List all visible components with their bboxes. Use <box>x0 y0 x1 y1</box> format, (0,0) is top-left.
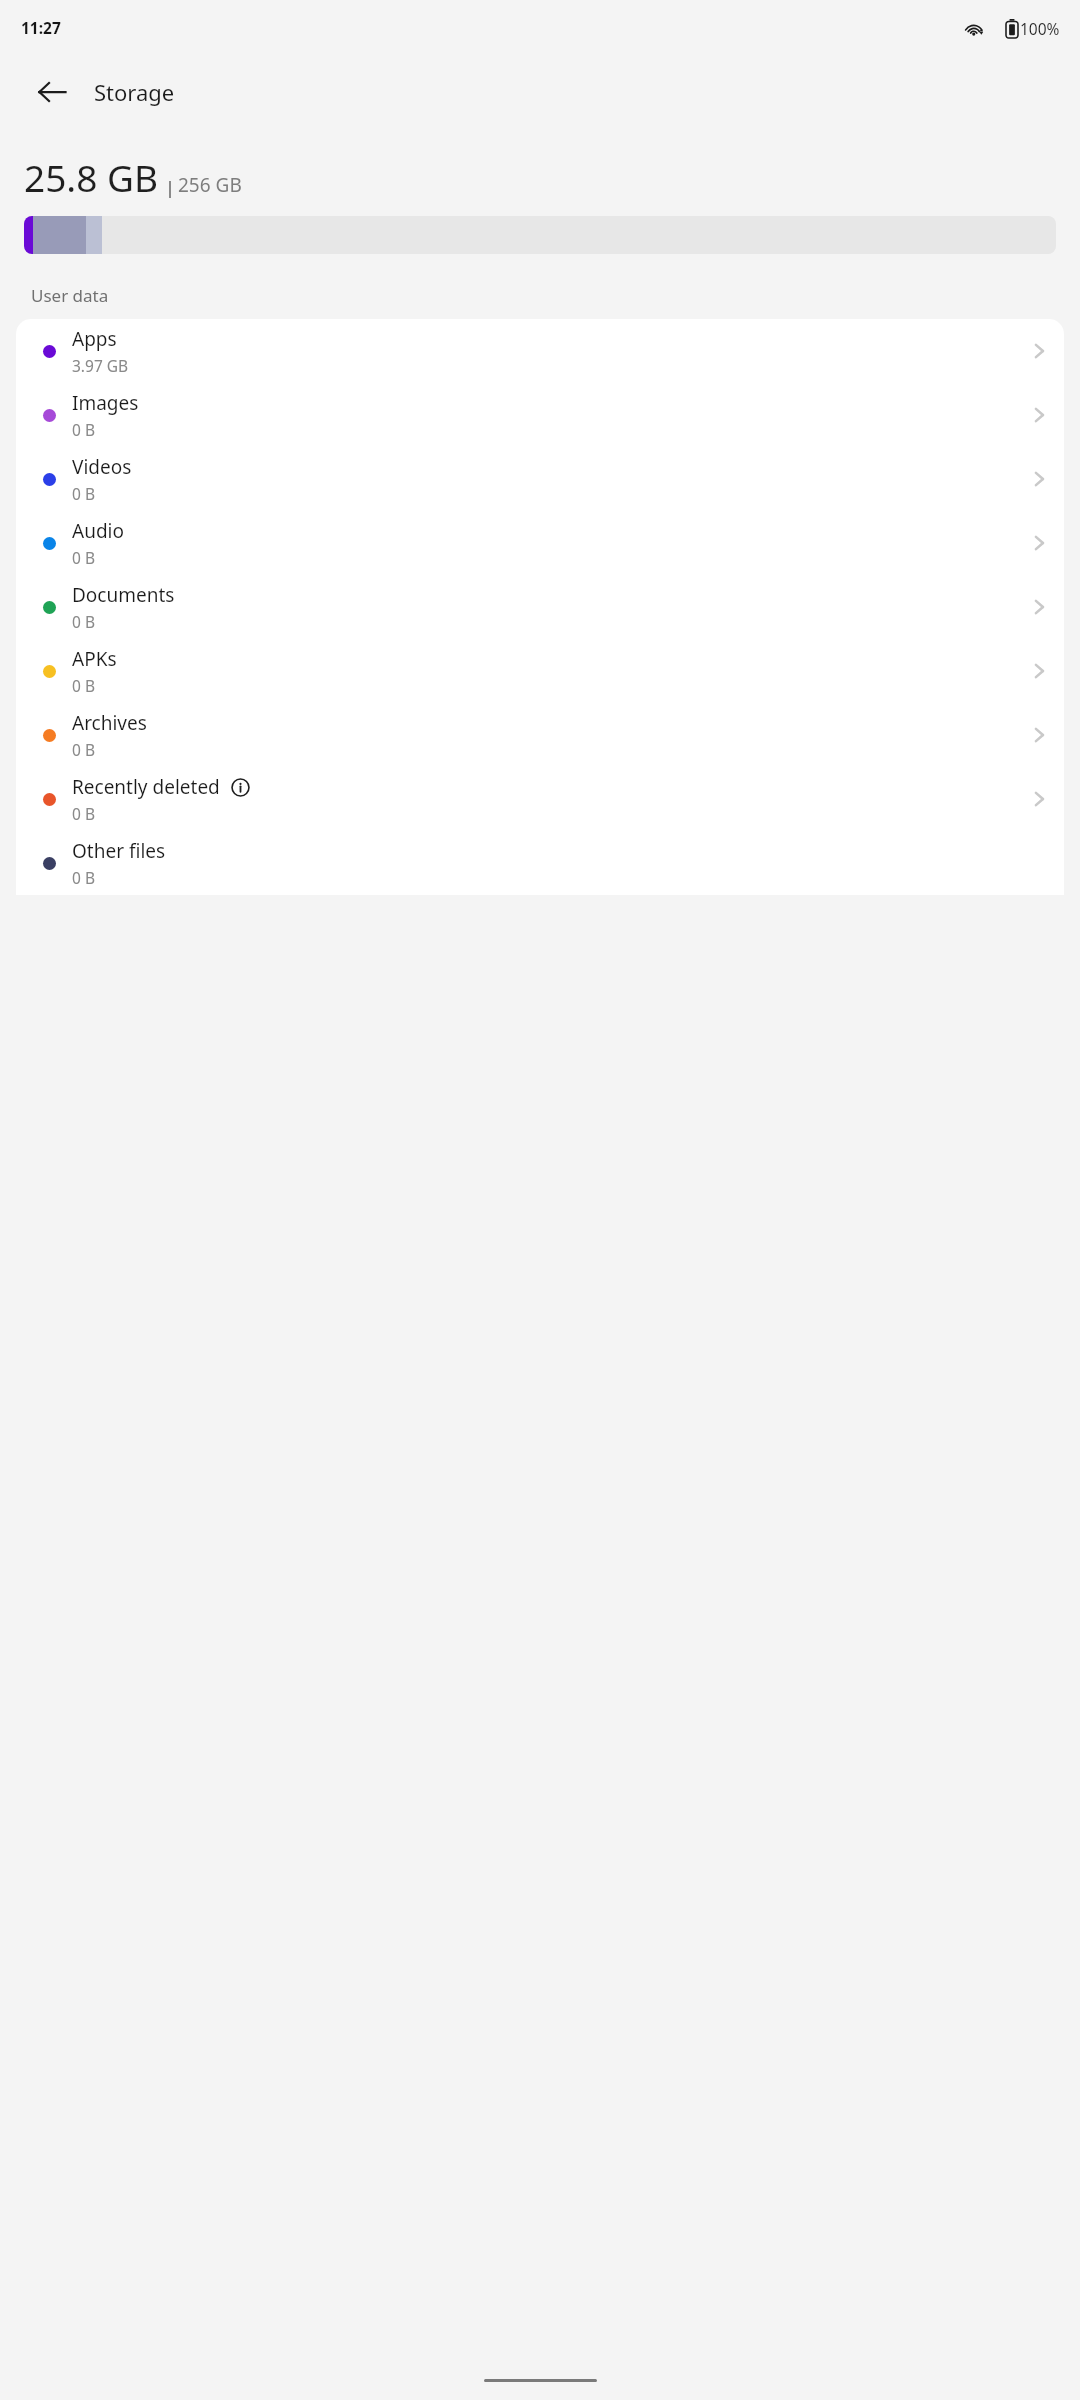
staticText: Archives <box>72 710 147 736</box>
staticText: 11:27 <box>21 17 61 38</box>
staticText: 3.97 GB <box>72 355 129 376</box>
staticText: Documents <box>72 582 175 608</box>
staticText: 0 B <box>72 419 95 440</box>
staticText: Videos <box>72 454 132 480</box>
staticText: 0 B <box>72 803 95 824</box>
staticText: 0 B <box>72 547 95 568</box>
button[interactable]: Audio <box>16 511 1064 575</box>
staticText: 256 GB <box>178 172 242 198</box>
button[interactable]: APKs <box>16 639 1064 703</box>
button[interactable]: Videos <box>16 447 1064 511</box>
staticText: 0 B <box>72 611 95 632</box>
button[interactable]: Recently deleted <box>16 767 1064 831</box>
button[interactable]: Archives <box>16 703 1064 767</box>
staticText: Storage <box>94 77 175 107</box>
staticText: 0 B <box>72 739 95 760</box>
staticText: 100% <box>1020 18 1060 39</box>
button[interactable]: Other files <box>16 831 1064 895</box>
staticText: Images <box>72 390 139 416</box>
staticText: Other files <box>72 838 166 864</box>
button[interactable]: Info <box>229 776 251 798</box>
staticText: APKs <box>72 646 117 672</box>
staticText: 0 B <box>72 483 95 504</box>
staticText: 25.8 GB <box>24 152 159 202</box>
button[interactable]: Back <box>24 64 80 120</box>
staticText: Recently deleted <box>72 774 220 800</box>
staticText: 0 B <box>72 675 95 696</box>
button[interactable]: Images <box>16 383 1064 447</box>
staticText: Audio <box>72 518 124 544</box>
staticText: Apps <box>72 326 117 352</box>
button[interactable]: Apps <box>16 319 1064 383</box>
button[interactable]: Documents <box>16 575 1064 639</box>
staticText: User data <box>31 284 109 307</box>
staticText: 0 B <box>72 867 95 888</box>
